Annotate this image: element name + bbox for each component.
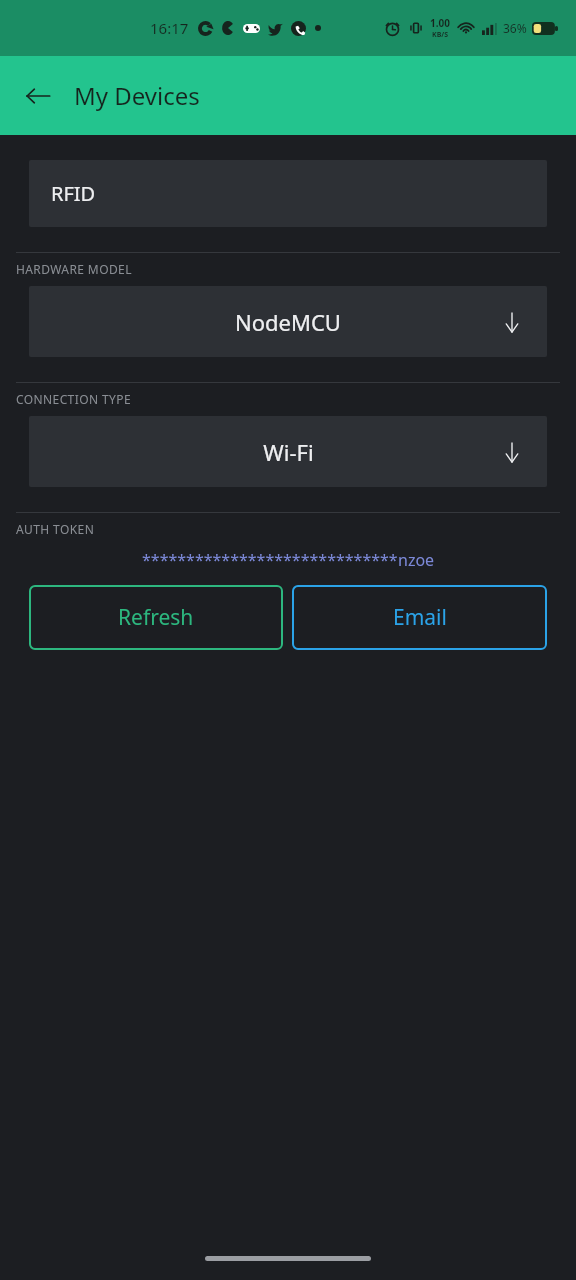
staticText: RFID — [51, 180, 96, 207]
button[interactable]: NodeMCU — [29, 286, 547, 357]
button[interactable]: RFID — [29, 160, 547, 227]
staticText: HARDWARE MODEL — [16, 261, 132, 277]
staticText: nzoe — [398, 549, 435, 571]
staticText: Email — [393, 603, 447, 632]
staticText: My Devices — [74, 79, 200, 112]
other: Expand — [499, 439, 525, 465]
staticText: ***************************** — [142, 549, 398, 571]
button[interactable]: Email — [292, 585, 547, 650]
staticText: Wi-Fi — [263, 437, 314, 467]
staticText: 1.00 — [430, 16, 450, 30]
staticText: Refresh — [118, 603, 194, 632]
button[interactable]: Wi-Fi — [29, 416, 547, 487]
staticText: 36% — [503, 20, 527, 36]
staticText: 16:17 — [150, 18, 189, 38]
other: Expand — [499, 309, 525, 335]
button[interactable]: Refresh — [29, 585, 283, 650]
staticText: KB/S — [432, 30, 449, 40]
button[interactable]: Back — [14, 72, 62, 120]
staticText: AUTH TOKEN — [16, 521, 95, 537]
staticText: NodeMCU — [235, 307, 341, 337]
staticText: CONNECTION TYPE — [16, 391, 131, 407]
